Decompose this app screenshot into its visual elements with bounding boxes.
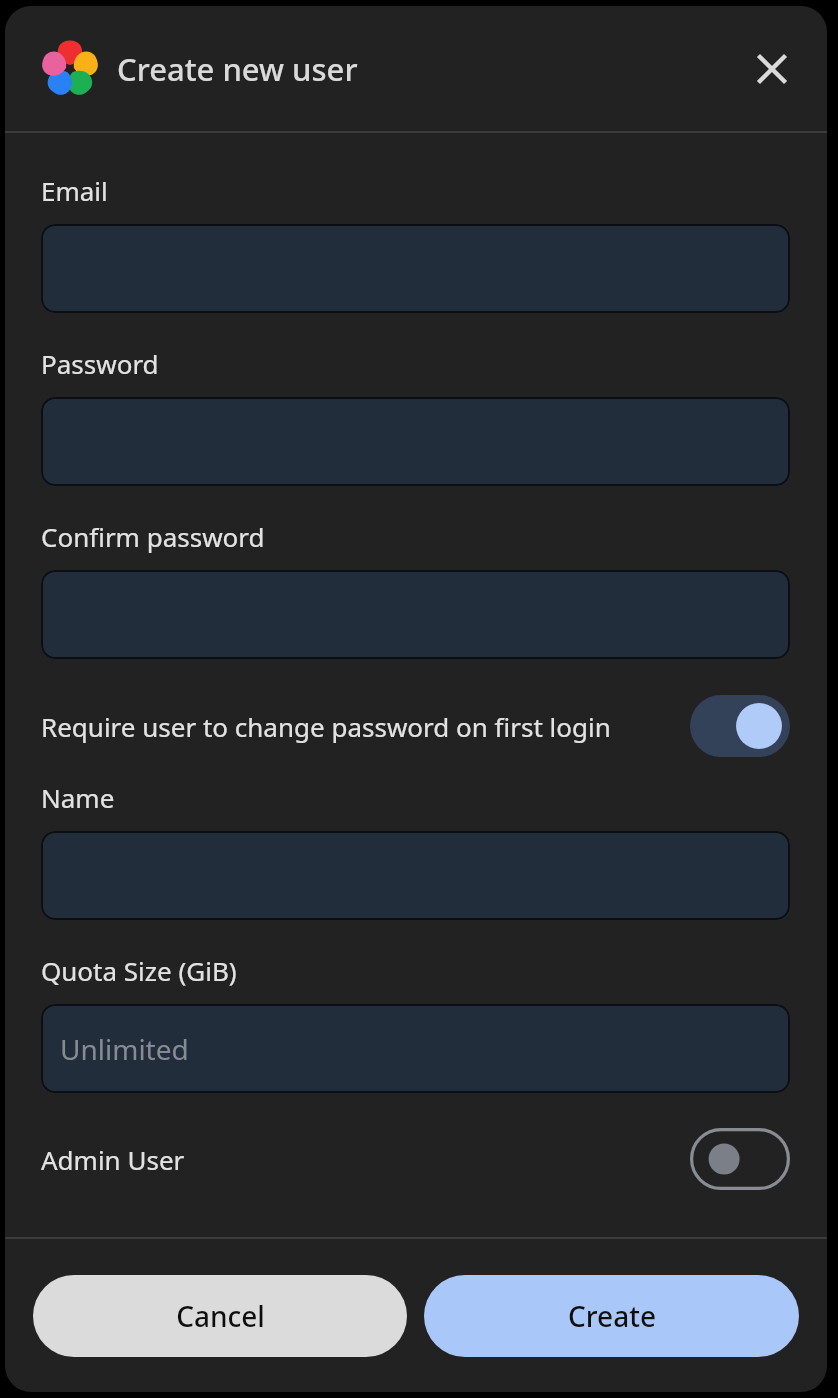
button[interactable]: Unlimited bbox=[41, 1004, 790, 1093]
staticText: Create bbox=[568, 1297, 656, 1335]
button[interactable] bbox=[41, 570, 790, 659]
staticText: Create new user bbox=[117, 48, 358, 90]
button[interactable] bbox=[41, 224, 790, 313]
button[interactable] bbox=[41, 831, 790, 920]
staticText: Unlimited bbox=[60, 1030, 189, 1068]
button[interactable]: Require user to change password on first… bbox=[41, 686, 790, 766]
staticText: Email bbox=[41, 173, 108, 208]
button[interactable]: Create bbox=[424, 1275, 799, 1357]
staticText: Admin User bbox=[41, 1142, 678, 1177]
staticText: Name bbox=[41, 780, 115, 815]
staticText: Cancel bbox=[176, 1297, 265, 1335]
staticText: Require user to change password on first… bbox=[41, 709, 678, 744]
button[interactable]: Close bbox=[743, 40, 801, 98]
staticText: Confirm password bbox=[41, 519, 265, 554]
button[interactable]: Cancel bbox=[33, 1275, 407, 1357]
button[interactable]: Admin User bbox=[41, 1119, 790, 1199]
staticText: Password bbox=[41, 346, 159, 381]
button[interactable] bbox=[41, 397, 790, 486]
staticText: Quota Size (GiB) bbox=[41, 953, 237, 988]
